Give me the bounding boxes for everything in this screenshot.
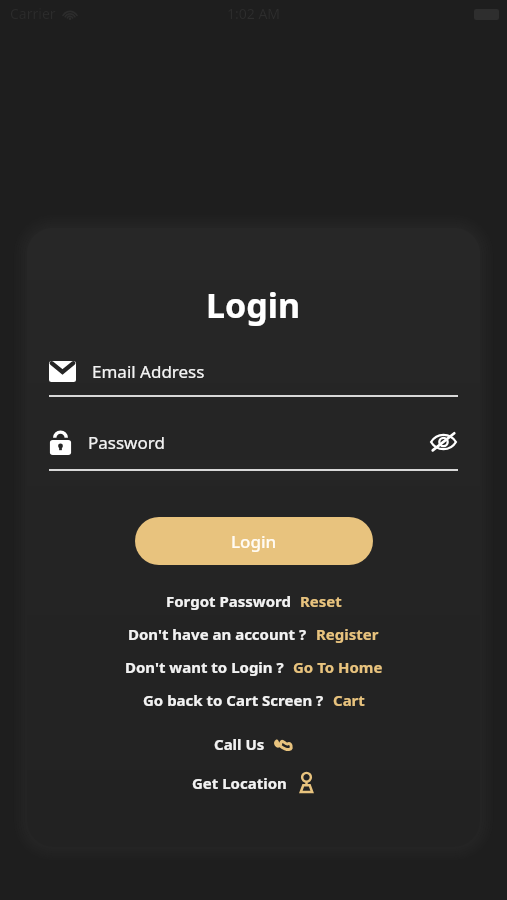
staticText: Go To Home <box>293 657 383 677</box>
other: Call Us <box>275 735 293 754</box>
staticText: Reset <box>300 591 342 611</box>
button[interactable]: Don't have an account ? <box>122 622 385 646</box>
staticText: Get Location <box>192 773 287 793</box>
button[interactable]: Call Us <box>208 730 299 758</box>
other: Get Location <box>297 772 316 793</box>
button[interactable]: Don't want to Login ? <box>119 655 389 679</box>
staticText: Register <box>316 624 379 644</box>
button[interactable]: Get Location <box>186 768 322 797</box>
button[interactable]: Forgot Password <box>160 589 348 613</box>
staticText: Don't want to Login ? <box>125 657 284 677</box>
staticText: Email Address <box>92 360 205 383</box>
staticText: Go back to Cart Screen ? <box>143 690 324 710</box>
staticText: Cart <box>333 690 365 710</box>
other: Password <box>49 429 72 455</box>
button[interactable]: Password <box>49 427 458 471</box>
staticText: Call Us <box>214 734 265 754</box>
staticText: Don't have an account ? <box>128 624 307 644</box>
staticText: 1:02 AM <box>227 4 281 23</box>
button[interactable]: Go back to Cart Screen ? <box>137 688 371 712</box>
other: Email <box>49 361 76 382</box>
button[interactable]: Toggle password visibility <box>428 427 458 457</box>
staticText: Login <box>206 282 301 328</box>
button[interactable]: Login <box>135 517 373 565</box>
staticText: Forgot Password <box>166 591 291 611</box>
staticText: Carrier <box>10 4 56 23</box>
button[interactable]: Email <box>49 360 458 397</box>
staticText: Password <box>88 431 165 454</box>
staticText: Login <box>231 530 277 553</box>
